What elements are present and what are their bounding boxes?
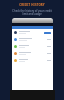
button[interactable]: Action	[44, 32, 51, 34]
button[interactable]	[12, 36, 53, 43]
button[interactable]	[12, 57, 53, 64]
staticText: Check the history of your credit limit a…	[12, 9, 52, 16]
button[interactable]	[12, 50, 53, 57]
button[interactable]	[12, 43, 53, 50]
staticText: CREDIT HISTORY	[19, 3, 45, 7]
button[interactable]: Action	[12, 29, 53, 36]
